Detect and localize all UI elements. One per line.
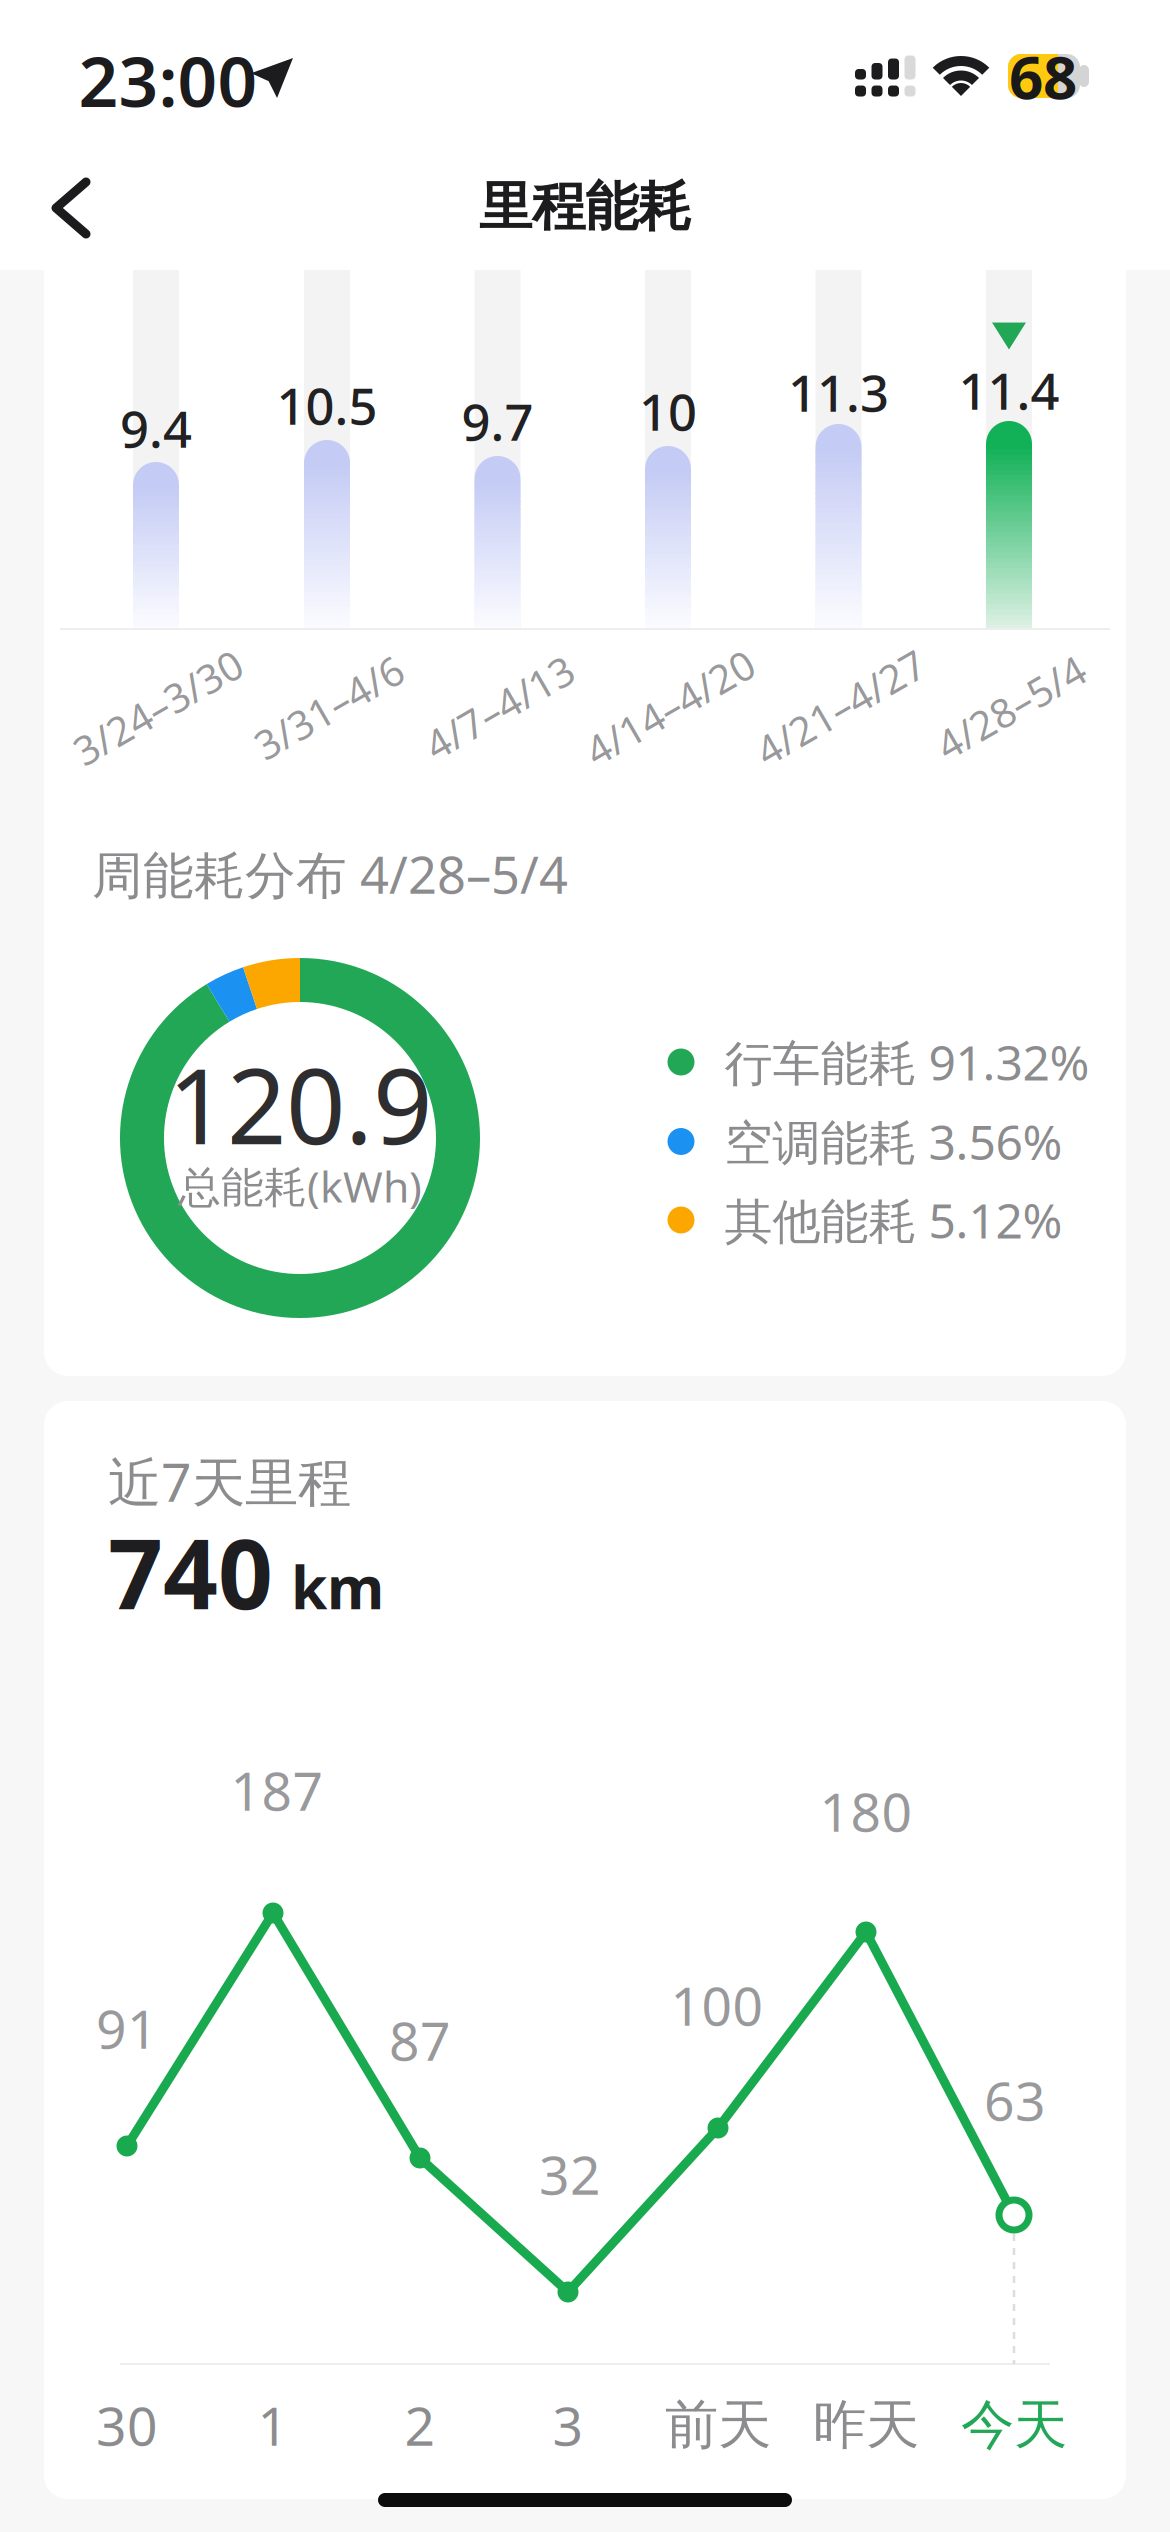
staticText: 3/31–4/6 bbox=[246, 680, 411, 733]
staticText: 87 bbox=[389, 2005, 451, 2075]
staticText: 9.7 bbox=[461, 387, 533, 455]
staticText: 9.4 bbox=[120, 394, 192, 462]
staticText: 100 bbox=[670, 1970, 763, 2040]
staticText: 总能耗(kWh) bbox=[178, 1158, 422, 1214]
staticText: 4/14–4/20 bbox=[576, 680, 764, 733]
staticText: 周能耗分布 4/28–5/4 bbox=[92, 840, 568, 908]
staticText: 740 bbox=[108, 1508, 273, 1636]
staticText: 120.9 bbox=[168, 1035, 432, 1173]
staticText: 其他能耗 5.12% bbox=[724, 1188, 1062, 1252]
staticText: 3/24–3/30 bbox=[64, 680, 252, 733]
staticText: 今天 bbox=[961, 2392, 1067, 2458]
staticText: 11.4 bbox=[958, 356, 1059, 424]
staticText: 1 bbox=[257, 2390, 288, 2460]
staticText: 68 bbox=[1009, 36, 1077, 116]
staticText: 23:00 bbox=[78, 34, 257, 126]
staticText: 4/7–4/13 bbox=[417, 680, 582, 733]
staticText: 91 bbox=[96, 1993, 158, 2063]
staticText: 昨天 bbox=[813, 2392, 919, 2458]
staticText: 180 bbox=[819, 1776, 912, 1846]
staticText: 空调能耗 3.56% bbox=[724, 1110, 1062, 1173]
staticText: km bbox=[291, 1547, 384, 1625]
staticText: 2 bbox=[404, 2390, 435, 2460]
staticText: 里程能耗 bbox=[479, 174, 691, 240]
staticText: 32 bbox=[539, 2139, 601, 2209]
staticText: 30 bbox=[96, 2390, 158, 2460]
staticText: 行车能耗 91.32% bbox=[724, 1030, 1089, 1094]
staticText: 近7天里程 bbox=[108, 1446, 351, 1516]
staticText: 3 bbox=[552, 2390, 583, 2460]
staticText: 10 bbox=[639, 377, 697, 445]
staticText: 187 bbox=[230, 1755, 323, 1825]
staticText: 11.3 bbox=[788, 358, 889, 426]
staticText: 前天 bbox=[665, 2392, 771, 2458]
staticText: 4/21–4/27 bbox=[746, 680, 934, 733]
staticText: 63 bbox=[984, 2065, 1046, 2135]
staticText: 10.5 bbox=[276, 371, 377, 439]
button[interactable]: Back bbox=[36, 162, 106, 254]
staticText: 4/28–5/4 bbox=[928, 680, 1093, 733]
